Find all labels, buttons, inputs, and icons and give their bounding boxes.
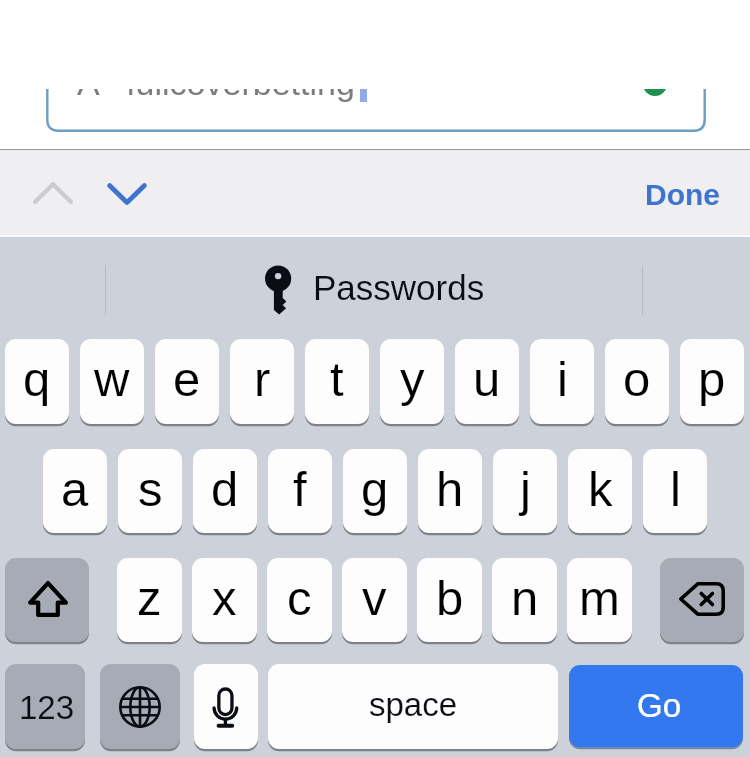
button[interactable]: h [418, 449, 482, 533]
button[interactable]: z [117, 558, 182, 642]
button[interactable]: x [192, 558, 257, 642]
staticText: s [138, 462, 163, 517]
button[interactable]: j [493, 449, 557, 533]
button[interactable]: f [268, 449, 332, 533]
button[interactable]: Shift [5, 558, 89, 642]
button[interactable]: Previous field [12, 152, 93, 233]
button[interactable]: space [268, 664, 558, 749]
staticText: z [137, 571, 162, 626]
button[interactable]: 123 [5, 664, 85, 749]
button[interactable]: u [455, 339, 519, 424]
staticText: k [588, 462, 613, 517]
button[interactable]: n [492, 558, 557, 642]
staticText: f [293, 462, 307, 517]
staticText: n [511, 571, 539, 626]
button[interactable]: Dictate [194, 664, 258, 749]
staticText: v [362, 571, 387, 626]
button[interactable]: Change keyboard [100, 664, 180, 749]
button[interactable]: r [230, 339, 294, 424]
staticText: x [212, 571, 237, 626]
button[interactable]: v [342, 558, 407, 642]
staticText: w [94, 352, 130, 407]
button[interactable]: d [193, 449, 257, 533]
staticText: g [361, 462, 389, 517]
button[interactable] [46, 56, 706, 132]
staticText: 123 [19, 689, 75, 726]
button[interactable]: l [643, 449, 707, 533]
staticText: b [436, 571, 464, 626]
button[interactable]: s [118, 449, 182, 533]
staticText: r [254, 352, 271, 407]
button[interactable]: e [155, 339, 219, 424]
button[interactable]: k [568, 449, 632, 533]
staticText: space [369, 686, 458, 723]
button[interactable]: g [343, 449, 407, 533]
staticText: q [23, 352, 51, 407]
button[interactable]: Go [569, 665, 743, 747]
button[interactable]: p [680, 339, 744, 424]
staticText: c [287, 571, 312, 626]
button[interactable]: Backspace [660, 558, 744, 642]
button[interactable]: o [605, 339, 669, 424]
staticText: h [436, 462, 464, 517]
button[interactable]: q [5, 339, 69, 424]
button[interactable]: Passwords [106, 265, 642, 317]
staticText: i [557, 352, 568, 407]
staticText: a [61, 462, 89, 517]
staticText: Done [645, 178, 720, 212]
staticText: Go [637, 687, 682, 724]
staticText: y [400, 352, 425, 407]
staticText: d [211, 462, 239, 517]
button[interactable]: w [80, 339, 144, 424]
staticText: Passwords [313, 268, 485, 307]
button[interactable]: Done [625, 155, 739, 235]
staticText: m [579, 571, 620, 626]
button[interactable]: m [567, 558, 632, 642]
staticText: o [623, 352, 651, 407]
button[interactable]: Next field [86, 153, 167, 234]
staticText: j [520, 462, 531, 517]
button[interactable]: y [380, 339, 444, 424]
staticText: l [670, 462, 681, 517]
staticText: e [173, 352, 201, 407]
button[interactable]: c [267, 558, 332, 642]
button[interactable]: i [530, 339, 594, 424]
staticText: p [698, 352, 726, 407]
staticText: u [473, 352, 501, 407]
staticText: A fullcoverbetting [77, 64, 355, 102]
button[interactable]: a [43, 449, 107, 533]
staticText: t [330, 352, 344, 407]
button[interactable]: t [305, 339, 369, 424]
button[interactable]: b [417, 558, 482, 642]
